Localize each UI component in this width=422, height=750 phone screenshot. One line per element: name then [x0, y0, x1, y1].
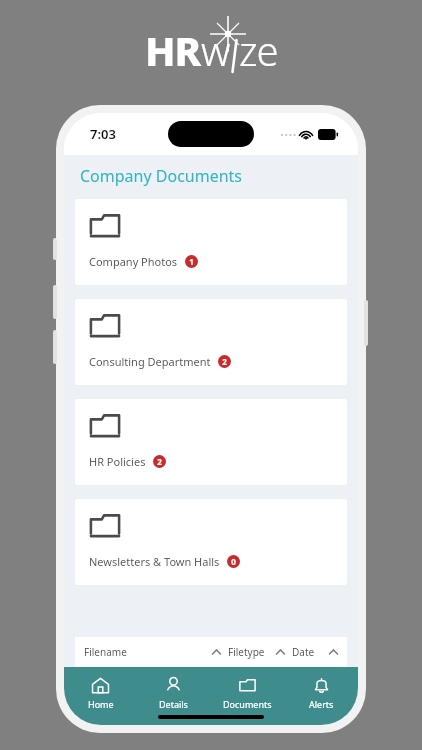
- button[interactable]: Details: [137, 667, 210, 725]
- staticText: 2: [157, 456, 162, 467]
- staticText: 7:03: [90, 125, 116, 143]
- staticText: 0: [231, 556, 236, 567]
- staticText: Alerts: [309, 698, 334, 710]
- button[interactable]: HR Policies: [75, 399, 347, 485]
- staticText: Filename: [84, 645, 127, 659]
- other: Sort ascending: [276, 649, 285, 655]
- button[interactable]: Consulting Department: [75, 299, 347, 385]
- staticText: Filetype: [228, 645, 265, 659]
- staticText: HR Policies: [89, 454, 146, 469]
- button[interactable]: Filetype: [228, 637, 285, 667]
- staticText: 1: [189, 256, 194, 267]
- button[interactable]: Date: [292, 637, 347, 667]
- button[interactable]: Home: [64, 667, 137, 725]
- staticText: Consulting Department: [89, 354, 211, 369]
- staticText: Company Documents: [80, 165, 243, 187]
- other: Sort ascending: [329, 649, 338, 655]
- button[interactable]: Alerts: [284, 667, 358, 725]
- button[interactable]: Company Photos: [75, 199, 347, 285]
- button[interactable]: Documents: [210, 667, 284, 725]
- button[interactable]: Filename: [75, 637, 221, 667]
- staticText: Date: [292, 645, 315, 659]
- staticText: w: [201, 23, 230, 77]
- staticText: ze: [239, 23, 278, 77]
- staticText: Details: [159, 698, 188, 710]
- staticText: Company Photos: [89, 254, 178, 269]
- staticText: 2: [222, 356, 227, 367]
- staticText: Documents: [223, 698, 272, 710]
- other: Sort ascending: [212, 649, 221, 655]
- staticText: Newsletters & Town Halls: [89, 554, 220, 569]
- staticText: Home: [88, 698, 114, 710]
- button[interactable]: Newsletters & Town Halls: [75, 499, 347, 585]
- staticText: HR: [145, 23, 201, 77]
